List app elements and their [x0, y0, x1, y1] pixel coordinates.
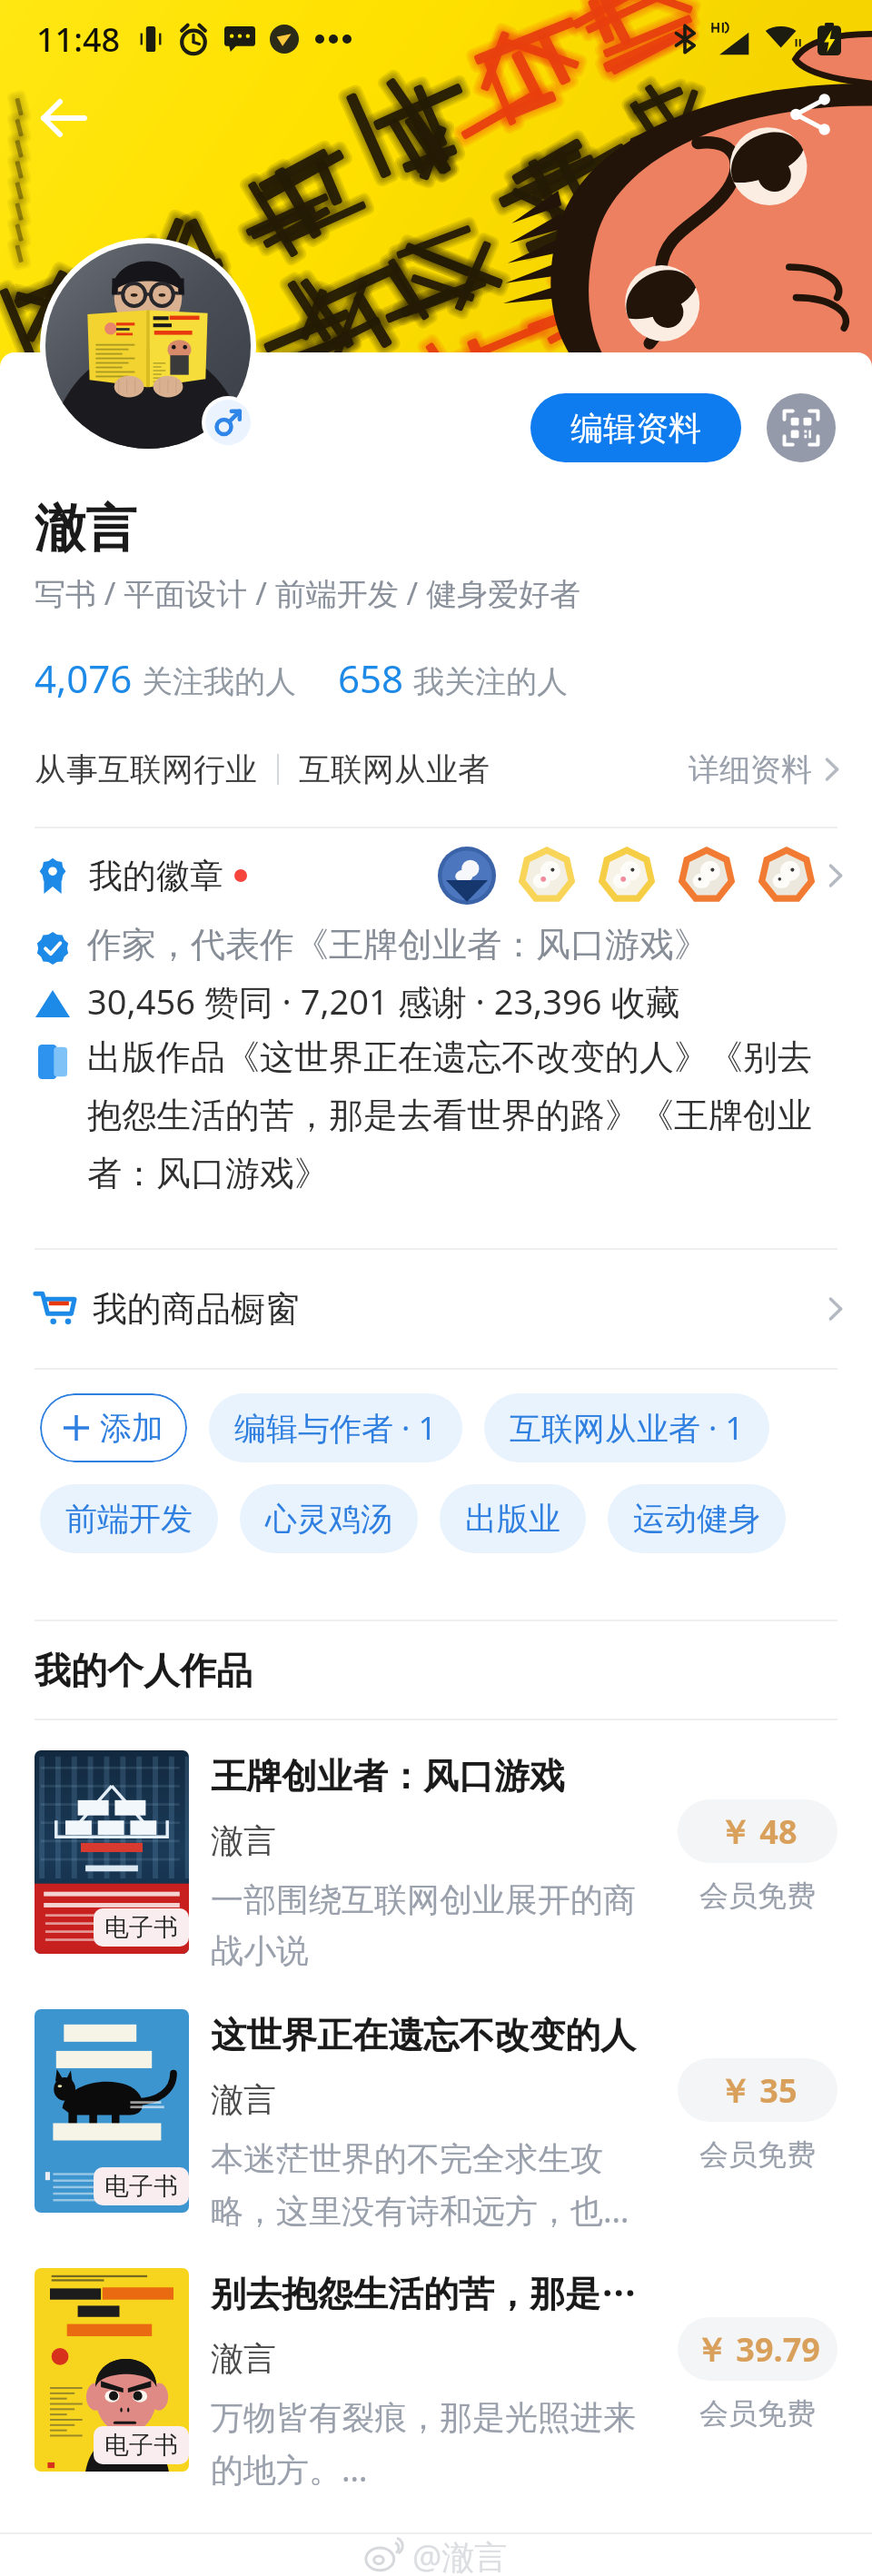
staticText: 我的个人作品: [35, 1648, 253, 1693]
button[interactable]: ￥ 48: [678, 1799, 837, 1863]
staticText: 电子书: [104, 2430, 178, 2461]
staticText: 出版作品《这世界正在遗忘不改变的人》《别去抱怨生活的苦，那是去看世界的路》《王牌…: [87, 1035, 843, 1195]
staticText: 心灵鸡汤: [265, 1499, 392, 1539]
staticText: 互联网从业者 · 1: [510, 1406, 744, 1450]
staticText: 写书 / 平面设计 / 前端开发 / 健身爱好者: [35, 572, 580, 614]
staticText: 我关注的人: [413, 662, 568, 701]
staticText: 出版业: [465, 1499, 560, 1539]
button[interactable]: 出版业: [440, 1484, 586, 1553]
button[interactable]: 编辑与作者 · 1: [209, 1393, 462, 1462]
button[interactable]: 我的商品橱窗: [35, 1250, 843, 1368]
button[interactable]: 编辑资料: [530, 393, 741, 462]
button[interactable]: Profile photo: [45, 243, 251, 449]
button[interactable]: 从事互联网行业: [35, 749, 839, 789]
button[interactable]: 电子书: [0, 2238, 872, 2497]
staticText: 30,456 赞同 · 7,201 感谢 · 23,396 收藏: [87, 977, 680, 1025]
staticText: 我的徽章: [89, 855, 223, 897]
button[interactable]: 电子书: [0, 1979, 872, 2238]
button[interactable]: 电子书: [0, 1720, 872, 1979]
staticText: 互联网从业者: [299, 749, 490, 789]
staticText: ￥ 39.79: [695, 2327, 820, 2372]
staticText: 作家，代表作《王牌创业者：风口游戏》: [87, 923, 708, 966]
button[interactable]: 前端开发: [40, 1484, 218, 1553]
staticText: 会员免费: [699, 2136, 816, 2173]
staticText: ￥ 48: [718, 1809, 798, 1854]
staticText: 658: [338, 652, 404, 704]
staticText: 4,076: [35, 652, 133, 704]
button[interactable]: QR code: [767, 393, 836, 462]
staticText: 本迷茫世界的不完全求生攻略，这里没有诗和远方，也…: [211, 2138, 645, 2233]
button[interactable]: 4,076: [35, 652, 296, 704]
staticText: 澈言: [35, 497, 136, 561]
button[interactable]: 添加: [40, 1393, 187, 1462]
button[interactable]: ￥ 39.79: [678, 2317, 837, 2381]
staticText: 前端开发: [65, 1499, 193, 1539]
staticText: 澈言: [211, 1820, 276, 1861]
staticText: 会员免费: [699, 2395, 816, 2432]
button[interactable]: 我的徽章: [35, 828, 843, 923]
button[interactable]: 658: [338, 652, 568, 704]
staticText: 添加: [100, 1408, 163, 1448]
button[interactable]: 运动健身: [608, 1484, 786, 1553]
staticText: 详细资料: [689, 750, 812, 789]
staticText: 万物皆有裂痕，那是光照进来的地方。…: [211, 2397, 645, 2492]
button[interactable]: Back: [25, 80, 102, 156]
staticText: 编辑资料: [570, 408, 701, 449]
staticText: 一部围绕互联网创业展开的商战小说: [211, 1879, 645, 1972]
button[interactable]: Share: [772, 76, 848, 153]
staticText: 澈言: [211, 2079, 276, 2120]
staticText: 这世界正在遗忘不改变的人: [211, 2013, 636, 2057]
staticText: 11:48: [36, 17, 121, 62]
staticText: 运动健身: [633, 1499, 760, 1539]
staticText: 关注我的人: [142, 662, 296, 701]
staticText: @澈言: [412, 2534, 508, 2576]
staticText: 别去抱怨生活的苦，那是去…: [211, 2272, 645, 2316]
staticText: 编辑与作者 · 1: [234, 1406, 437, 1450]
staticText: 电子书: [104, 2171, 178, 2202]
staticText: 王牌创业者：风口游戏: [211, 1754, 565, 1798]
button[interactable]: ￥ 35: [678, 2058, 837, 2122]
staticText: ￥ 35: [718, 2068, 798, 2113]
staticText: 会员免费: [699, 1878, 816, 1914]
button[interactable]: 互联网从业者 · 1: [484, 1393, 769, 1462]
staticText: 从事互联网行业: [35, 749, 257, 789]
staticText: 我的商品橱窗: [93, 1287, 300, 1331]
staticText: 澈言: [211, 2338, 276, 2379]
staticText: 电子书: [104, 1912, 178, 1943]
button[interactable]: 心灵鸡汤: [240, 1484, 418, 1553]
